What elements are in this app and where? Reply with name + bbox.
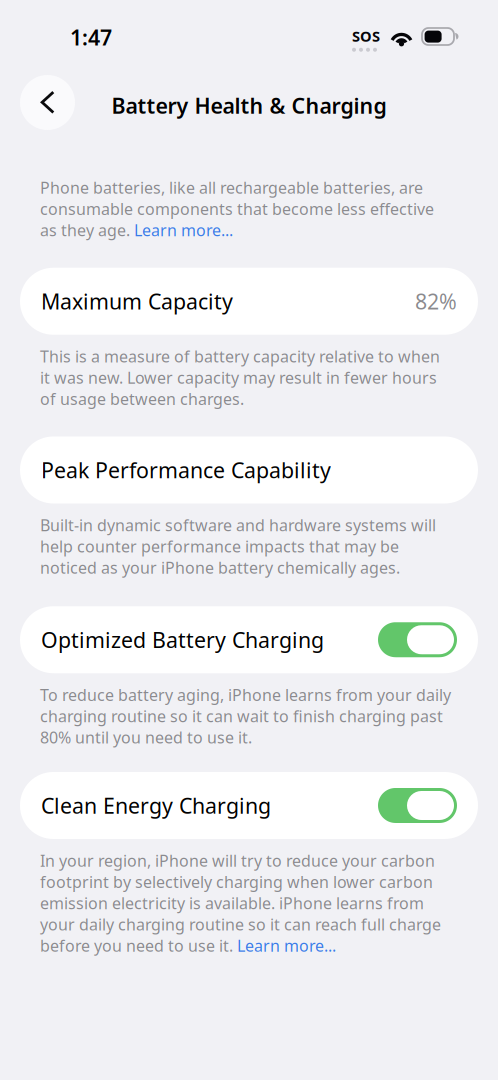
button[interactable]: Back [20,75,75,130]
button[interactable]: Learn more... [134,219,233,241]
staticText: charging routine so it can wait to finis… [40,705,443,727]
staticText: Maximum Capacity [41,287,233,315]
staticText: it was new. Lower capacity may result in… [40,367,437,388]
button[interactable]: Maximum Capacity [0,268,498,335]
staticText: emission electricity is available. iPhon… [40,892,424,914]
staticText: Optimized Battery Charging [41,626,324,654]
staticText: help counter performance impacts that ma… [40,536,399,557]
staticText: To reduce battery aging, iPhone learns f… [40,684,451,705]
staticText: Battery Health & Charging [111,91,386,120]
staticText: Learn more... [237,935,336,956]
staticText: SOS [352,26,380,46]
staticText: as they age. [40,219,134,241]
staticText: 1:47 [70,23,112,51]
staticText: 82% [415,287,457,315]
button[interactable]: Optimized Battery Charging [0,606,498,673]
staticText: your daily charging routine so it can re… [40,914,441,935]
button[interactable]: Peak Performance Capability [0,436,498,503]
staticText: before you need to use it. [40,935,237,956]
staticText: Learn more... [134,219,233,241]
staticText: This is a measure of battery capacity re… [40,346,440,367]
staticText: footprint by selectively charging when l… [40,871,433,892]
staticText: of usage between charges. [40,388,244,409]
staticText: Phone batteries, like all rechargeable b… [40,177,423,198]
staticText: Clean Energy Charging [41,791,271,820]
staticText: 80% until you need to use it. [40,727,252,748]
staticText: Built-in dynamic software and hardware s… [40,514,436,536]
staticText: Peak Performance Capability [41,456,331,484]
button[interactable]: Learn more... [237,935,336,956]
staticText: consumable components that become less e… [40,198,434,219]
staticText: noticed as your iPhone battery chemicall… [40,557,400,578]
staticText: In your region, iPhone will try to reduc… [40,850,435,871]
button[interactable]: Clean Energy Charging [0,772,498,839]
